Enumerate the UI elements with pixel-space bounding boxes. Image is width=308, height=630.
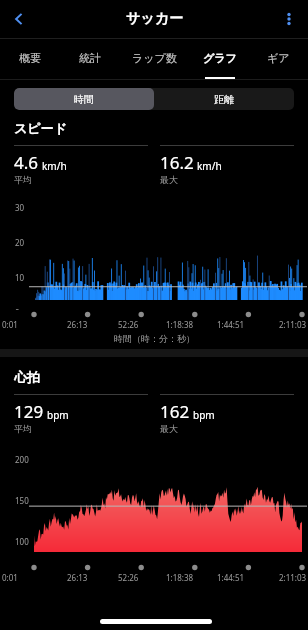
button[interactable]: 時間 (14, 88, 154, 110)
button[interactable]: グラフ (190, 39, 249, 79)
staticText: 0:01 (2, 319, 18, 330)
staticText: 距離 (214, 93, 234, 106)
staticText: 1:44:51 (217, 572, 245, 583)
button[interactable]: Back (0, 0, 38, 38)
staticText: 150 (15, 495, 29, 506)
button[interactable]: More options (270, 0, 308, 38)
staticText: 0:01 (2, 572, 18, 583)
staticText: 200 (15, 454, 29, 465)
staticText: 最大 (160, 423, 178, 434)
staticText: km/h (197, 159, 222, 173)
staticText: 162 (160, 400, 190, 423)
staticText: 26:13 (67, 572, 88, 583)
staticText: 概要 (19, 51, 41, 65)
staticText: 時間（時：分：秒） (114, 333, 195, 344)
staticText: 16.2 (160, 151, 194, 174)
staticText: 30 (15, 202, 25, 213)
staticText: 平均 (14, 423, 32, 434)
button[interactable]: 統計 (60, 39, 119, 79)
staticText: 52:26 (118, 319, 139, 330)
button[interactable]: ラップ数 (119, 39, 190, 79)
staticText: 統計 (79, 51, 101, 65)
staticText: 129 (14, 400, 44, 423)
staticText: 最大 (160, 174, 178, 185)
staticText: 1:18:38 (166, 319, 194, 330)
staticText: bpm (47, 408, 69, 422)
staticText: km/h (42, 159, 67, 173)
staticText: サッカー (126, 10, 183, 28)
staticText: 時間 (74, 93, 94, 106)
staticText: ギア (267, 51, 290, 65)
staticText: 1:18:38 (166, 572, 194, 583)
staticText: 100 (15, 536, 29, 547)
staticText: グラフ (203, 51, 237, 65)
staticText: ラップ数 (132, 51, 177, 65)
staticText: 26:13 (67, 319, 88, 330)
staticText: 0 (15, 307, 20, 310)
staticText: 平均 (14, 174, 32, 185)
staticText: 2:11:03 (279, 319, 307, 330)
button[interactable]: 概要 (0, 39, 60, 79)
staticText: 4.6 (14, 151, 39, 174)
staticText: 心拍 (14, 369, 40, 385)
staticText: 10 (15, 272, 25, 283)
staticText: 20 (15, 237, 25, 248)
staticText: 2:11:03 (279, 572, 307, 583)
button[interactable]: 距離 (154, 88, 294, 110)
button[interactable]: ギア (249, 39, 308, 79)
staticText: 52:26 (118, 572, 139, 583)
staticText: スピード (14, 120, 67, 136)
staticText: 1:44:51 (217, 319, 245, 330)
staticText: bpm (193, 408, 215, 422)
